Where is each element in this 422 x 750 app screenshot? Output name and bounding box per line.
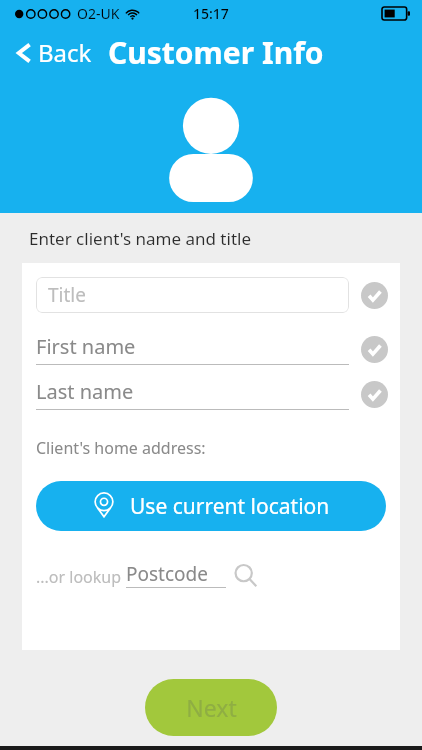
staticText: Next bbox=[186, 692, 237, 723]
staticText: Customer Info bbox=[108, 32, 324, 73]
button[interactable]: Confirm field bbox=[361, 336, 388, 363]
staticText: Use current location bbox=[130, 492, 330, 521]
staticText: Back bbox=[38, 36, 92, 69]
button[interactable]: Last name bbox=[36, 378, 349, 410]
staticText: Client's home address: bbox=[36, 437, 206, 459]
button[interactable]: ...or lookup bbox=[36, 561, 256, 588]
staticText: First name bbox=[36, 333, 136, 360]
other: Search postcode bbox=[234, 564, 256, 588]
button[interactable]: Back bbox=[10, 32, 96, 73]
staticText: Postcode bbox=[126, 561, 208, 587]
button[interactable]: First name bbox=[36, 333, 349, 365]
button[interactable]: Confirm field bbox=[361, 282, 388, 309]
staticText: O2-UK bbox=[77, 4, 120, 23]
staticText: ...or lookup bbox=[36, 566, 126, 588]
staticText: 15:17 bbox=[193, 4, 229, 23]
staticText: Enter client's name and title bbox=[29, 227, 252, 250]
staticText: Title bbox=[48, 282, 86, 308]
button[interactable]: Title bbox=[36, 277, 349, 313]
button[interactable]: Use current location bbox=[36, 481, 386, 531]
button[interactable]: Next bbox=[145, 679, 277, 736]
button[interactable]: Confirm field bbox=[361, 381, 388, 408]
staticText: Last name bbox=[36, 378, 134, 405]
